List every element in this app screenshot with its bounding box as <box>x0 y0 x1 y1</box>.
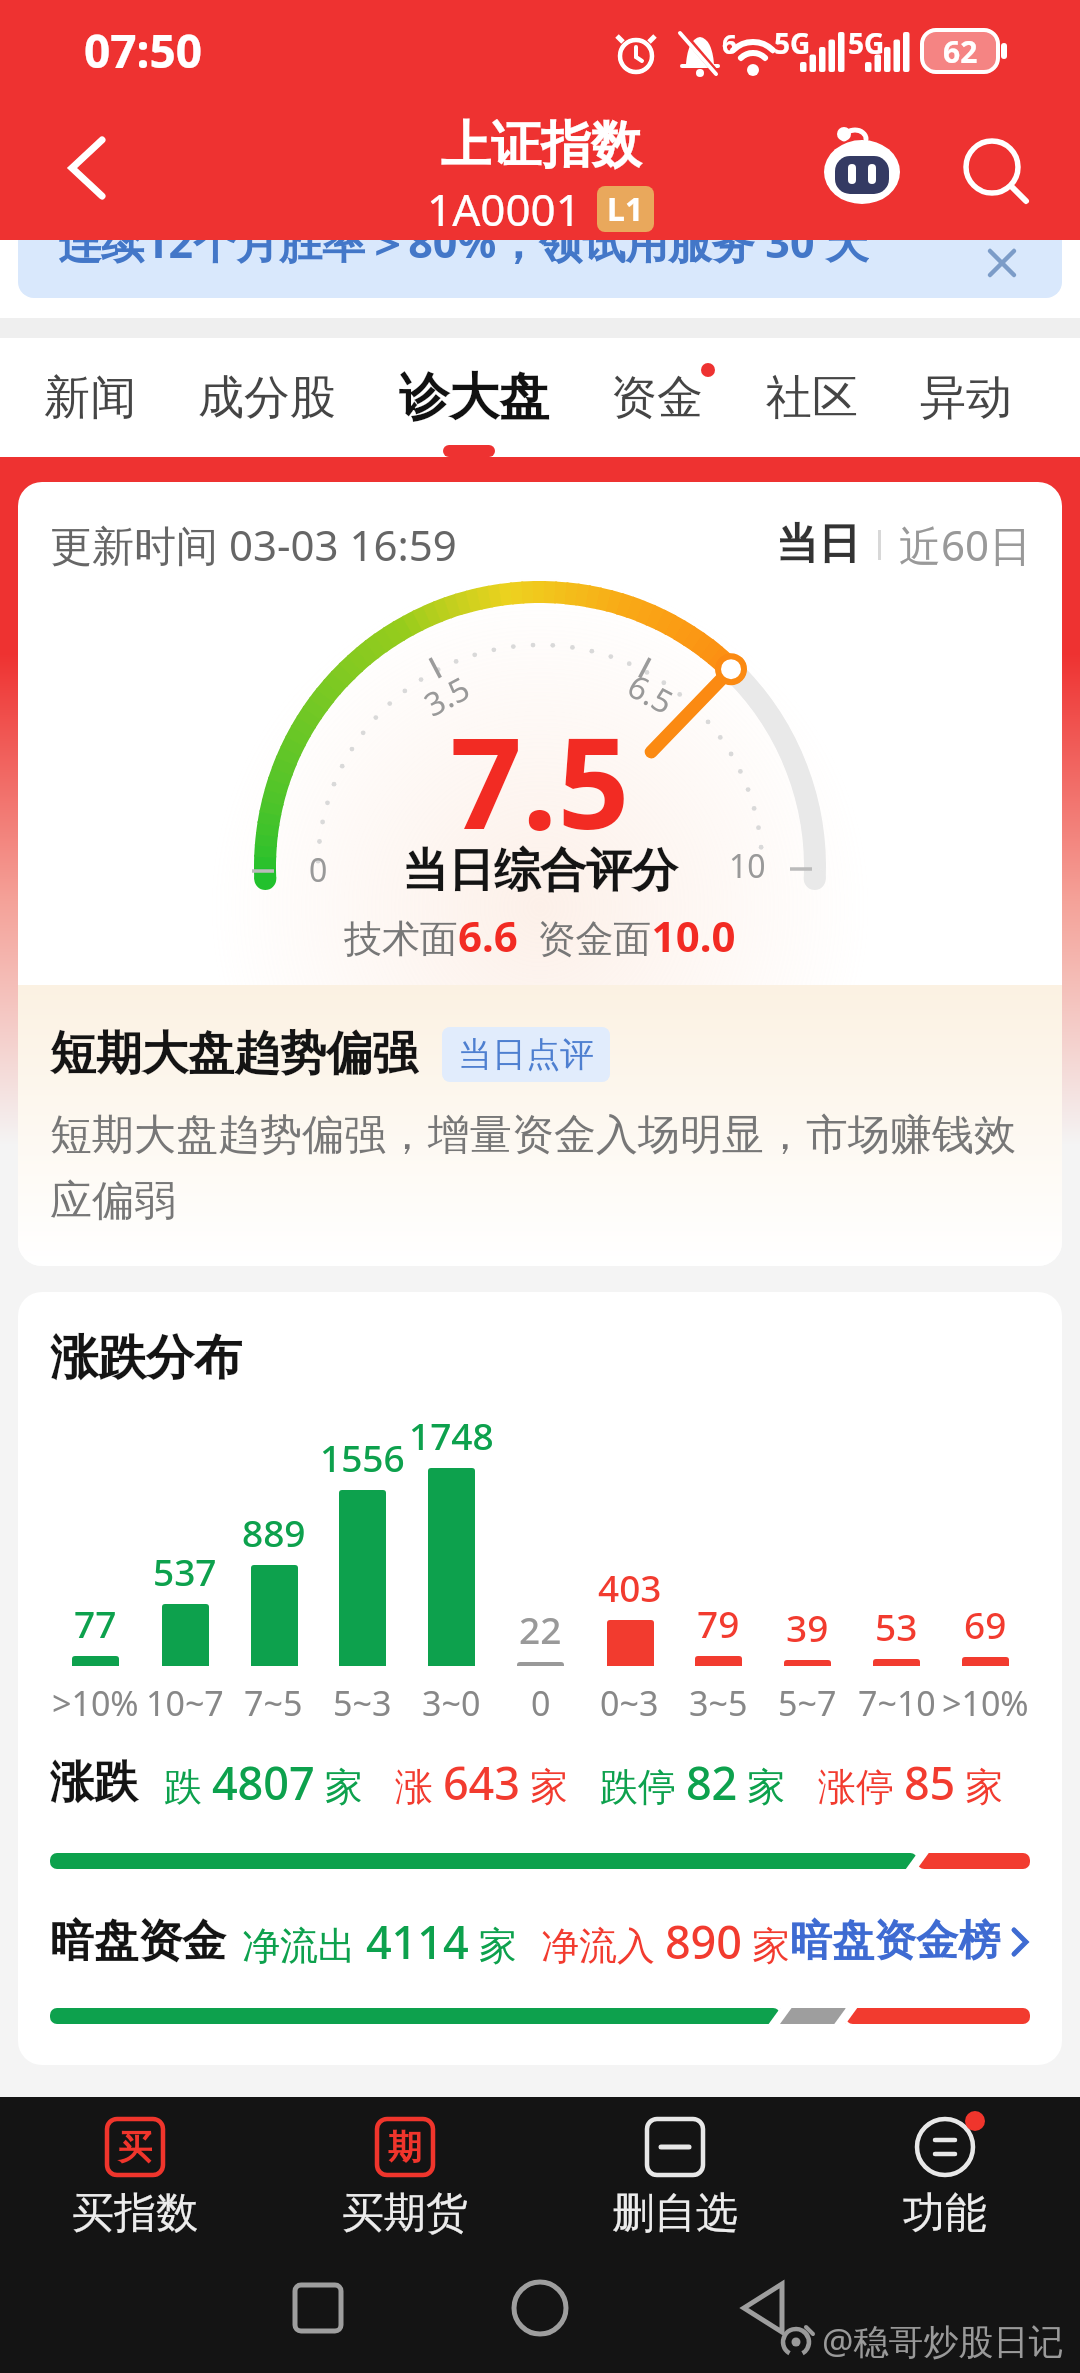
button[interactable] <box>50 135 120 205</box>
staticText: 连续12个月胜率＞80%，领试用服务 30 天 <box>58 240 869 270</box>
staticText: 22 <box>519 1604 562 1654</box>
staticText: 涨停 85 家 <box>818 1752 1004 1813</box>
staticText: 功能 <box>903 2187 987 2240</box>
staticText: 买期货 <box>342 2187 468 2240</box>
staticText: 889 <box>242 1507 306 1557</box>
staticText: 69 <box>964 1599 1007 1649</box>
staticText: 5~7 <box>778 1680 837 1726</box>
button[interactable]: 买 <box>0 2115 270 2240</box>
staticText: 上证指数 <box>441 114 641 177</box>
staticText: 5~3 <box>333 1680 392 1726</box>
staticText: 0 <box>309 848 328 892</box>
staticText: L1 <box>607 187 644 231</box>
staticText: 77 <box>74 1598 117 1648</box>
button[interactable]: 近60日 <box>899 516 1032 573</box>
button[interactable]: 成分股 <box>198 369 336 427</box>
staticText: 涨 643 家 <box>395 1752 568 1813</box>
staticText: 暗盘资金榜 <box>790 1915 1000 1968</box>
staticText: 6 <box>722 26 737 61</box>
button[interactable]: 新闻 <box>44 369 136 427</box>
staticText: @稳哥炒股日记 <box>822 2317 1064 2365</box>
staticText: 期 <box>388 2126 422 2169</box>
staticText: 10 <box>729 844 766 888</box>
staticText: 7~5 <box>244 1680 303 1726</box>
staticText: 62 <box>943 31 978 72</box>
staticText: 涨跌 <box>50 1755 138 1810</box>
staticText: 净流入 890 家 <box>541 1911 790 1972</box>
button[interactable]: 期 <box>270 2115 540 2240</box>
staticText: 跌停 82 家 <box>600 1752 786 1813</box>
staticText: 涨跌分布 <box>50 1328 242 1388</box>
staticText: >10% <box>942 1680 1029 1726</box>
button[interactable]: 暗盘资金榜 <box>790 1915 1030 1968</box>
button[interactable]: 功能 <box>810 2115 1080 2240</box>
staticText: 1A0001 <box>427 179 581 239</box>
button[interactable] <box>982 249 1022 289</box>
staticText: 0~3 <box>600 1680 659 1726</box>
button[interactable]: 异动 <box>920 369 1012 427</box>
staticText: 净流出 4114 家 <box>242 1911 517 1972</box>
staticText: 当日综合评分 <box>402 842 678 900</box>
staticText: 删自选 <box>612 2187 738 2240</box>
staticText: 79 <box>697 1598 740 1648</box>
staticText: 07:50 <box>84 19 203 82</box>
staticText: 3.5 <box>416 666 478 726</box>
staticText: 1556 <box>320 1432 405 1482</box>
button[interactable]: 诊大盘 <box>399 366 549 429</box>
staticText: 7.5 <box>450 694 630 866</box>
staticText: 更新时间 03-03 16:59 <box>50 516 457 573</box>
staticText: >10% <box>52 1680 139 1726</box>
button[interactable]: 删自选 <box>540 2115 810 2240</box>
staticText: 0 <box>531 1680 551 1726</box>
staticText: 短期大盘趋势偏强，增量资金入场明显，市场赚钱效 应偏弱 <box>50 1109 1016 1228</box>
button[interactable] <box>818 132 906 208</box>
staticText: 1748 <box>409 1410 494 1460</box>
button[interactable]: 资金 <box>611 369 703 427</box>
staticText: 3~5 <box>689 1680 748 1726</box>
button[interactable]: 社区 <box>766 369 858 427</box>
staticText: 短期大盘趋势偏强 <box>50 1025 418 1083</box>
staticText: 39 <box>786 1602 829 1652</box>
staticText: 暗盘资金 <box>50 1914 226 1969</box>
staticText: 6.5 <box>620 664 682 724</box>
staticText: 买 <box>118 2126 152 2169</box>
staticText: 资金 <box>611 369 703 427</box>
button[interactable]: 当日 <box>776 518 860 571</box>
staticText: 10~7 <box>146 1680 224 1726</box>
staticText: 403 <box>598 1562 662 1612</box>
staticText: 53 <box>875 1601 918 1651</box>
staticText: 买指数 <box>72 2187 198 2240</box>
staticText: 跌 4807 家 <box>164 1752 363 1813</box>
staticText: 7~10 <box>858 1680 936 1726</box>
staticText: 技术面6.6 资金面10.0 <box>344 907 736 964</box>
staticText: 537 <box>153 1546 217 1596</box>
button[interactable]: 当日点评 <box>458 1033 594 1076</box>
staticText: 当日点评 <box>458 1033 594 1076</box>
button[interactable] <box>950 125 1040 215</box>
staticText: 3~0 <box>422 1680 481 1726</box>
staticText: 5G <box>848 24 885 62</box>
staticText: 5G <box>774 24 811 62</box>
